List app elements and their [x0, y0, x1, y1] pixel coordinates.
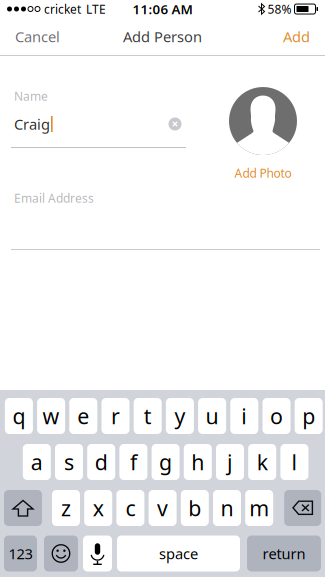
staticText: Add — [283, 27, 310, 46]
button[interactable]: Shift — [4, 490, 42, 526]
button[interactable]: Dictate — [83, 535, 112, 571]
button[interactable]: 123 — [4, 535, 37, 571]
staticText: o — [270, 402, 283, 430]
button[interactable]: n — [213, 490, 241, 526]
staticText: g — [159, 448, 172, 476]
staticText: b — [188, 494, 201, 522]
button[interactable]: Clear text — [164, 113, 186, 135]
staticText: return — [262, 544, 305, 563]
staticText: Craig — [14, 114, 50, 134]
staticText: h — [191, 448, 204, 476]
button[interactable]: t — [134, 398, 162, 434]
button[interactable]: Delete — [284, 490, 321, 526]
button[interactable]: w — [37, 398, 65, 434]
button[interactable]: i — [230, 398, 258, 434]
staticText: e — [77, 402, 89, 430]
button[interactable]: o — [262, 398, 290, 434]
staticText: k — [257, 448, 268, 476]
button[interactable]: x — [84, 490, 112, 526]
button[interactable]: y — [166, 398, 194, 434]
button[interactable]: Cancel — [0, 18, 75, 55]
staticText: Add Photo — [234, 165, 291, 181]
button[interactable]: d — [87, 444, 115, 480]
staticText: Name — [14, 88, 48, 104]
staticText: 123 — [8, 544, 32, 563]
button[interactable]: h — [184, 444, 212, 480]
button[interactable]: space — [117, 535, 240, 571]
staticText: s — [64, 448, 74, 476]
staticText: d — [95, 448, 108, 476]
staticText: l — [291, 448, 297, 476]
button[interactable]: z — [52, 490, 80, 526]
staticText: n — [220, 494, 233, 522]
staticText: Email Address — [14, 190, 94, 206]
button[interactable]: j — [216, 444, 244, 480]
staticText: m — [249, 494, 269, 522]
button[interactable]: g — [152, 444, 180, 480]
button[interactable]: m — [245, 490, 273, 526]
button[interactable]: Add Photo — [229, 87, 297, 181]
button[interactable]: return — [247, 535, 321, 571]
staticText: u — [206, 402, 219, 430]
button[interactable]: q — [5, 398, 33, 434]
button[interactable]: u — [198, 398, 226, 434]
staticText: r — [111, 402, 120, 430]
staticText: LTE — [86, 1, 106, 17]
button[interactable]: s — [55, 444, 83, 480]
button[interactable]: Add — [268, 18, 325, 55]
button[interactable]: c — [116, 490, 144, 526]
staticText: Add Person — [123, 27, 202, 46]
button[interactable]: a — [23, 444, 51, 480]
staticText: f — [130, 448, 137, 476]
button[interactable]: e — [69, 398, 97, 434]
button[interactable]: v — [149, 490, 177, 526]
button[interactable]: r — [101, 398, 129, 434]
staticText: 11:06 AM — [132, 0, 192, 18]
staticText: i — [241, 402, 247, 430]
staticText: p — [302, 402, 315, 430]
staticText: y — [174, 402, 185, 430]
staticText: q — [12, 402, 25, 430]
button[interactable]: f — [119, 444, 147, 480]
staticText: t — [144, 402, 152, 430]
staticText: z — [61, 494, 71, 522]
button[interactable]: b — [181, 490, 209, 526]
staticText: x — [93, 494, 104, 522]
staticText: space — [159, 544, 198, 563]
staticText: c — [125, 494, 135, 522]
button[interactable]: k — [248, 444, 276, 480]
button[interactable]: l — [280, 444, 308, 480]
staticText: a — [31, 448, 43, 476]
button[interactable]: p — [295, 398, 323, 434]
staticText: cricket — [44, 1, 81, 17]
button[interactable]: Emoji — [44, 535, 78, 571]
staticText: j — [227, 448, 233, 476]
staticText: w — [43, 402, 60, 430]
staticText: v — [157, 494, 168, 522]
staticText: 58% — [267, 1, 291, 17]
staticText: Cancel — [15, 27, 60, 46]
